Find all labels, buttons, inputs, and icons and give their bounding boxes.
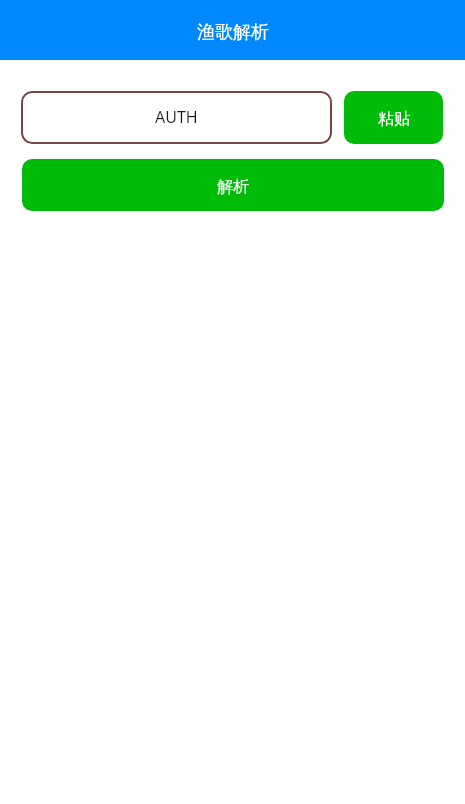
staticText: 解析 xyxy=(217,177,249,197)
button[interactable]: 解析 xyxy=(22,159,444,211)
button[interactable]: 粘贴 xyxy=(344,91,443,144)
staticText: AUTH xyxy=(155,106,198,128)
staticText: 粘贴 xyxy=(378,109,410,129)
staticText: 渔歌解析 xyxy=(197,21,269,44)
button[interactable]: AUTH input field xyxy=(21,91,332,144)
